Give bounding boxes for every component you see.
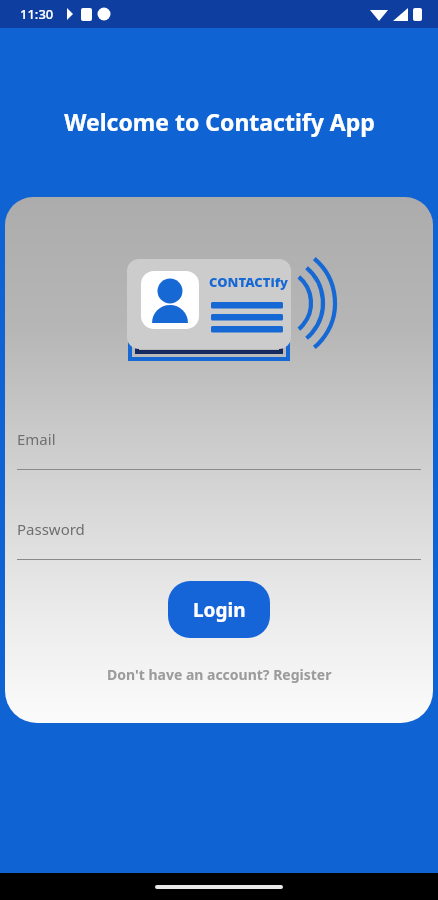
button[interactable]: Login <box>168 581 270 638</box>
staticText: Email <box>17 429 56 449</box>
staticText: Don't have an account? Register <box>107 665 332 684</box>
staticText: Password <box>17 519 85 539</box>
staticText: Welcome to Contactify App <box>64 106 375 137</box>
button[interactable]: Email <box>5 429 433 470</box>
button[interactable]: Don't have an account? Register <box>99 661 340 688</box>
other: Contactify logo <box>119 253 319 373</box>
staticText: CONTACTify <box>209 273 288 291</box>
staticText: Login <box>193 597 246 623</box>
button[interactable]: Password <box>5 519 433 560</box>
staticText: 11:30 <box>20 5 54 23</box>
